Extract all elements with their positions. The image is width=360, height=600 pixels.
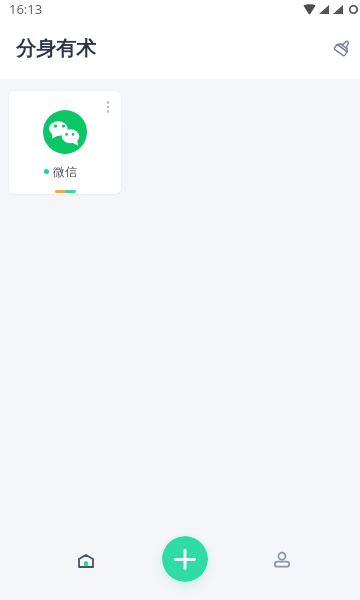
button[interactable]: Home	[62, 537, 110, 585]
button[interactable]: Add	[162, 536, 208, 582]
staticText: 分身有术	[16, 36, 96, 61]
button[interactable]: Theme	[326, 30, 360, 64]
staticText: 微信	[53, 164, 77, 179]
button[interactable]: More options	[9, 91, 121, 194]
button[interactable]: Profile	[258, 536, 306, 584]
button[interactable]: More options	[101, 100, 115, 114]
staticText: 16:13	[9, 0, 43, 18]
